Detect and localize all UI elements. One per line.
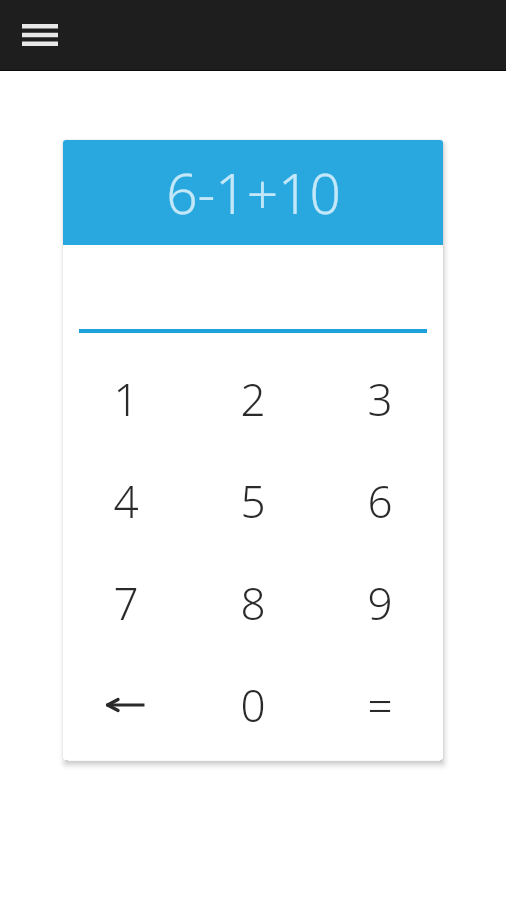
- staticText: =: [367, 675, 393, 735]
- staticText: 5: [240, 471, 266, 531]
- button[interactable]: 5: [189, 450, 316, 552]
- staticText: 6: [367, 471, 393, 531]
- button[interactable]: 7: [63, 552, 189, 654]
- staticText: 3: [367, 369, 393, 429]
- staticText: 7: [113, 573, 139, 633]
- staticText: 1: [113, 369, 139, 429]
- button[interactable]: Backspace: [63, 654, 189, 756]
- staticText: 6-1+10: [166, 155, 341, 230]
- staticText: 9: [367, 573, 393, 633]
- button[interactable]: 2: [189, 348, 316, 450]
- button[interactable]: Open navigation menu: [14, 13, 66, 57]
- button[interactable]: 0: [189, 654, 316, 756]
- button[interactable]: =: [316, 654, 443, 756]
- staticText: 0: [240, 675, 266, 735]
- staticText: 2: [240, 369, 266, 429]
- button[interactable]: 4: [63, 450, 189, 552]
- button[interactable]: 8: [189, 552, 316, 654]
- staticText: 8: [240, 573, 266, 633]
- button[interactable]: 6: [316, 450, 443, 552]
- button[interactable]: 1: [63, 348, 189, 450]
- button[interactable]: 3: [316, 348, 443, 450]
- staticText: 4: [113, 471, 139, 531]
- button[interactable]: 9: [316, 552, 443, 654]
